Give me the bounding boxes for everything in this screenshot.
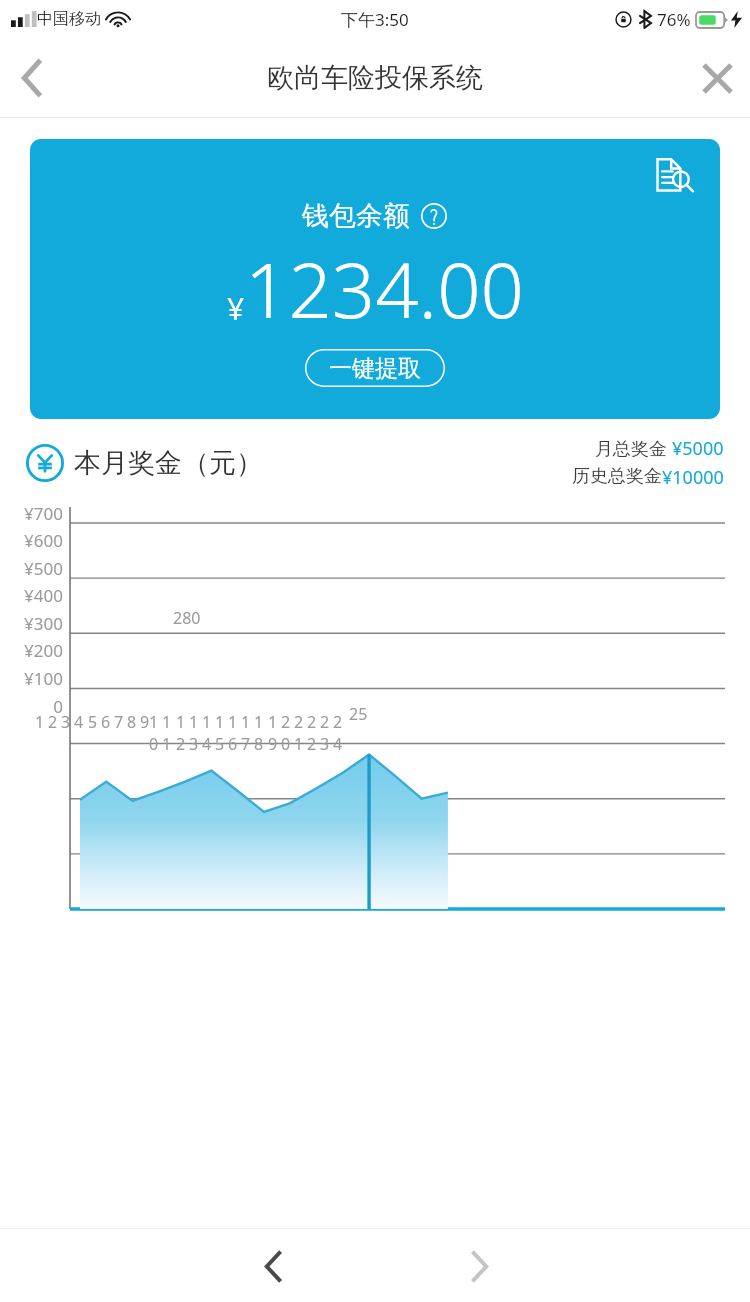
button[interactable]: 一键提取 <box>305 349 445 387</box>
staticText: 76% <box>657 8 691 31</box>
staticText: 25 <box>349 703 368 725</box>
staticText: ¥500 <box>24 557 63 580</box>
button[interactable]: Previous <box>236 1230 308 1302</box>
staticText: 5 <box>88 711 98 733</box>
staticText: 中国移动 <box>37 9 101 29</box>
staticText: 一键提取 <box>329 354 421 383</box>
staticText: 280 <box>173 607 201 629</box>
staticText: ¥400 <box>24 584 63 607</box>
staticText: ¥700 <box>24 502 63 525</box>
button[interactable]: Records <box>30 139 720 419</box>
staticText: 1 <box>35 711 45 733</box>
staticText: 0 <box>53 695 63 718</box>
staticText: 23 <box>320 711 338 755</box>
staticText: ¥5000 <box>672 436 724 461</box>
staticText: 欧尚车险投保系统 <box>267 61 483 95</box>
staticText: 1234.00 <box>245 237 524 341</box>
staticText: 20 <box>281 711 299 755</box>
button[interactable]: Close <box>684 45 750 111</box>
staticText: ¥10000 <box>662 465 724 490</box>
staticText: 10 <box>149 711 167 755</box>
staticText: 24 <box>333 711 351 755</box>
staticText: 9 <box>140 711 150 733</box>
staticText: 钱包余额 <box>302 199 410 233</box>
staticText: 历史总奖金 <box>572 465 662 488</box>
staticText: ¥300 <box>24 612 63 635</box>
staticText: 15 <box>215 711 233 755</box>
staticText: 22 <box>307 711 325 755</box>
staticText: 21 <box>294 711 312 755</box>
staticText: 下午3:50 <box>341 8 409 31</box>
staticText: 11 <box>162 711 180 755</box>
staticText: 18 <box>254 711 272 755</box>
staticText: ¥100 <box>24 667 63 690</box>
staticText: 4 <box>74 711 84 733</box>
staticText: 14 <box>202 711 220 755</box>
staticText: 12 <box>176 711 194 755</box>
button[interactable]: Help <box>419 201 449 231</box>
staticText: 17 <box>241 711 259 755</box>
staticText: ¥200 <box>24 639 63 662</box>
staticText: 8 <box>127 711 137 733</box>
staticText: ¥600 <box>24 529 63 552</box>
staticText: 3 <box>61 711 71 733</box>
staticText: 6 <box>101 711 111 733</box>
staticText: 16 <box>228 711 246 755</box>
staticText: 7 <box>114 711 124 733</box>
button[interactable]: Records <box>652 153 698 199</box>
staticText: ¥ <box>227 288 245 329</box>
staticText: 19 <box>268 711 286 755</box>
staticText: 本月奖金（元） <box>74 446 263 480</box>
button[interactable]: Next <box>443 1230 515 1302</box>
staticText: 13 <box>189 711 207 755</box>
button[interactable]: Back <box>0 47 62 109</box>
button[interactable]: 本月奖金（元） <box>26 444 263 482</box>
staticText: 2 <box>48 711 58 733</box>
staticText: 月总奖金 <box>595 436 672 461</box>
